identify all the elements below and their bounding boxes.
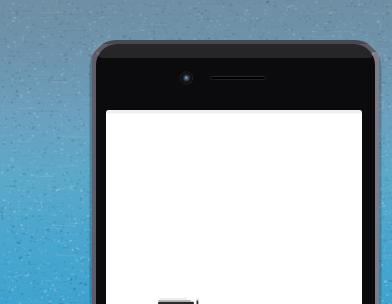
button[interactable]: Phone mockup screen [0, 0, 392, 304]
